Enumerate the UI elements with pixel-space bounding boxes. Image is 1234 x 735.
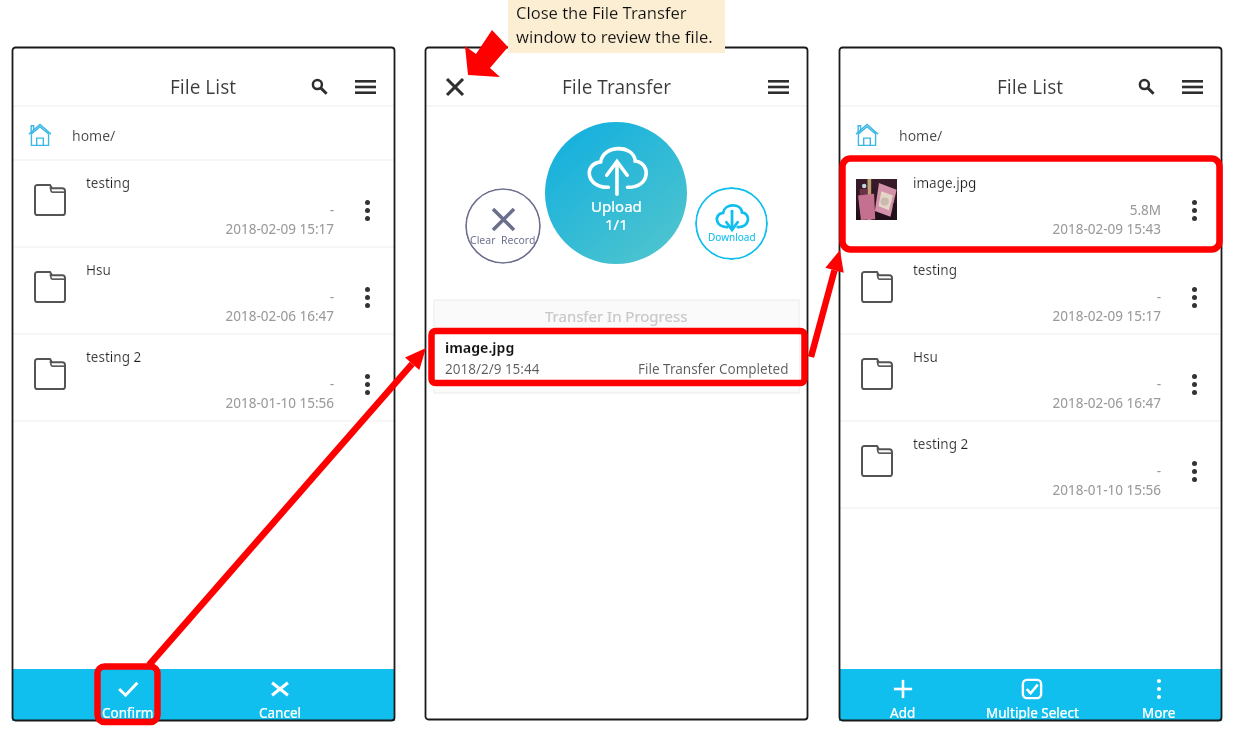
button[interactable]: home/ <box>12 107 395 161</box>
staticText: Multiple Select <box>986 704 1079 721</box>
staticText: Upload <box>591 196 642 216</box>
button[interactable]: home/ <box>839 107 1222 161</box>
staticText: 2018-02-09 15:43 <box>913 220 1161 238</box>
staticText: 2018-02-06 16:47 <box>913 394 1161 412</box>
staticText: 2018-02-09 15:17 <box>86 220 334 238</box>
staticText: testing 2 <box>913 435 969 453</box>
staticText: Hsu <box>913 348 938 366</box>
button[interactable]: More options <box>1175 335 1222 422</box>
button[interactable]: Hsu <box>839 335 1222 422</box>
button[interactable]: testing <box>12 161 395 248</box>
button[interactable]: testing <box>839 248 1222 335</box>
button[interactable]: Search <box>1125 70 1159 104</box>
staticText: 2018-01-10 15:56 <box>913 481 1161 499</box>
staticText: Cancel <box>259 704 302 721</box>
staticText: Clear Record <box>470 233 536 247</box>
staticText: Add <box>890 704 916 721</box>
staticText: window to review the file. <box>516 25 713 47</box>
staticText: testing <box>86 174 130 192</box>
button[interactable]: testing 2 <box>12 335 395 422</box>
staticText: Confirm <box>102 704 154 721</box>
staticText: File List <box>997 74 1064 100</box>
button[interactable]: More options <box>348 248 395 335</box>
staticText: image.jpg <box>913 174 977 192</box>
button[interactable]: Hsu <box>12 248 395 335</box>
button[interactable]: More <box>1129 669 1189 721</box>
button[interactable]: image.jpg <box>839 161 1222 248</box>
button[interactable]: Close <box>441 69 477 105</box>
button[interactable]: Cancel <box>250 669 310 721</box>
button[interactable]: More options <box>348 335 395 422</box>
button[interactable]: More options <box>1175 161 1222 248</box>
staticText: File Transfer <box>562 74 672 100</box>
button[interactable]: image.jpg <box>434 331 799 389</box>
button[interactable]: Menu <box>760 69 796 105</box>
button[interactable]: Add <box>873 669 933 721</box>
staticText: Transfer In Progress <box>545 306 688 326</box>
staticText: home/ <box>72 126 116 145</box>
button[interactable]: Menu <box>1174 69 1210 105</box>
button[interactable]: More options <box>1175 422 1222 509</box>
button[interactable]: Upload <box>545 122 687 264</box>
staticText: File Transfer Completed <box>638 360 789 378</box>
staticText: 2018-02-06 16:47 <box>86 307 334 325</box>
button[interactable]: testing 2 <box>839 422 1222 509</box>
button[interactable]: Clear Record <box>465 188 541 264</box>
staticText: 2018-01-10 15:56 <box>86 394 334 412</box>
staticText: File List <box>170 74 237 100</box>
staticText: 2018/2/9 15:44 <box>445 360 540 378</box>
staticText: 5.8M <box>913 201 1161 219</box>
button[interactable]: Menu <box>347 69 383 105</box>
staticText: Download <box>708 230 756 244</box>
button[interactable]: Multiple Select <box>972 669 1092 721</box>
button[interactable]: More options <box>348 161 395 248</box>
button[interactable]: Confirm <box>98 669 158 721</box>
staticText: More <box>1142 704 1176 721</box>
staticText: testing <box>913 261 957 279</box>
staticText: Close the File Transfer <box>516 1 687 23</box>
staticText: Hsu <box>86 261 111 279</box>
staticText: home/ <box>899 126 943 145</box>
button[interactable]: More options <box>1175 248 1222 335</box>
button[interactable]: Download <box>695 187 768 260</box>
staticText: 1/1 <box>605 214 628 234</box>
staticText: image.jpg <box>445 338 515 357</box>
button[interactable]: Search <box>298 70 332 104</box>
staticText: testing 2 <box>86 348 142 366</box>
staticText: 2018-02-09 15:17 <box>913 307 1161 325</box>
